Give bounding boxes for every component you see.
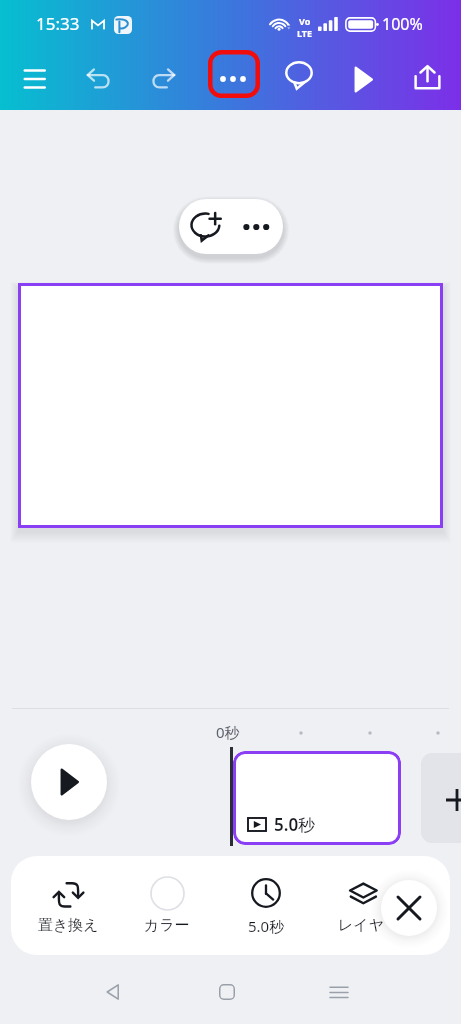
button[interactable]: 5.0秒 bbox=[217, 862, 315, 950]
button[interactable]: Menu bbox=[7, 48, 63, 110]
staticText: 5.0秒 bbox=[248, 916, 285, 936]
button[interactable]: Play preview bbox=[31, 744, 107, 820]
button[interactable]: Redo bbox=[134, 48, 190, 110]
button[interactable]: Back bbox=[82, 962, 142, 1022]
button[interactable]: Home bbox=[197, 962, 257, 1022]
button[interactable]: Share bbox=[399, 48, 455, 110]
button[interactable]: カラー bbox=[118, 862, 216, 950]
button[interactable]: More options bbox=[205, 48, 261, 110]
staticText: 5.0秒 bbox=[274, 813, 316, 836]
button[interactable]: Undo bbox=[72, 48, 128, 110]
button[interactable]: Play bbox=[335, 48, 391, 110]
button[interactable]: レイヤ bbox=[312, 862, 410, 950]
staticText: LTE bbox=[297, 27, 313, 39]
button[interactable]: Add media bbox=[421, 753, 461, 843]
button[interactable]: 置き換え bbox=[19, 862, 117, 950]
staticText: 0秒 bbox=[216, 722, 240, 742]
staticText: 100% bbox=[382, 13, 423, 35]
button[interactable]: Recents bbox=[309, 962, 369, 1022]
staticText: Vo bbox=[299, 15, 311, 27]
staticText: 置き換え bbox=[38, 916, 99, 935]
button[interactable]: Add comment options bbox=[179, 199, 283, 254]
staticText: カラー bbox=[144, 916, 190, 935]
button[interactable]: Close bbox=[381, 880, 437, 936]
staticText: レイヤ bbox=[338, 916, 385, 935]
button[interactable]: 5.0秒 bbox=[233, 751, 401, 845]
staticText: 15:33 bbox=[36, 12, 80, 35]
button[interactable]: Comments bbox=[271, 48, 327, 110]
